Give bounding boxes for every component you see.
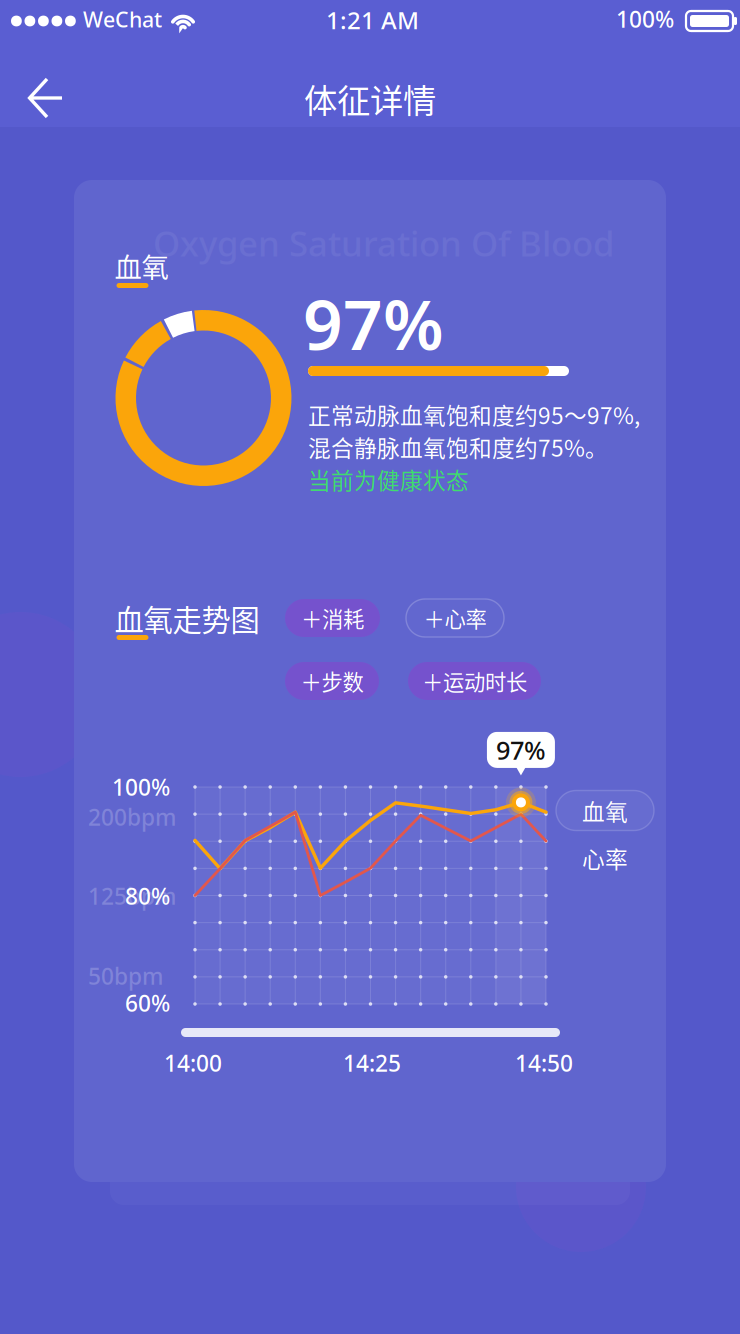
staticText: ＋运动时长 [422,666,527,696]
staticText: 14:25 [343,1048,401,1078]
staticText: ＋步数 [300,666,363,696]
staticText: 200bpm [88,802,176,832]
staticText: 心率 [582,842,628,874]
staticText: 100% [616,4,674,34]
staticText: 血氧 [582,794,628,827]
staticText: 14:00 [164,1048,222,1078]
staticText: WeChat [83,5,162,33]
staticText: 混合静脉血氧饱和度约75%。 [308,430,608,463]
button[interactable]: ＋步数 [285,662,379,700]
staticText: 当前为健康状态 [308,463,469,496]
staticText: ＋心率 [423,603,486,633]
staticText: 97% [496,733,546,767]
staticText: 1:21 AM [326,4,419,36]
staticText: 正常动脉血氧饱和度约95～97%, [308,398,640,431]
staticText: 125bpm [88,881,176,911]
staticText: 50bpm [88,961,163,991]
staticText: ＋消耗 [301,603,364,633]
staticText: 100% [112,772,170,802]
button[interactable]: ＋心率 [406,599,504,637]
button[interactable]: Back [14,66,78,130]
button[interactable]: ＋消耗 [285,599,380,637]
staticText: Oxygen Saturation Of Blood [153,220,614,266]
staticText: 60% [125,988,170,1018]
staticText: 体征详情 [304,74,436,123]
staticText: 血氧走势图 [114,597,259,639]
staticText: 14:50 [515,1048,573,1078]
button[interactable]: ＋运动时长 [408,662,541,700]
staticText: 血氧 [114,246,168,286]
staticText: 80% [125,881,170,911]
staticText: 97% [303,277,444,369]
